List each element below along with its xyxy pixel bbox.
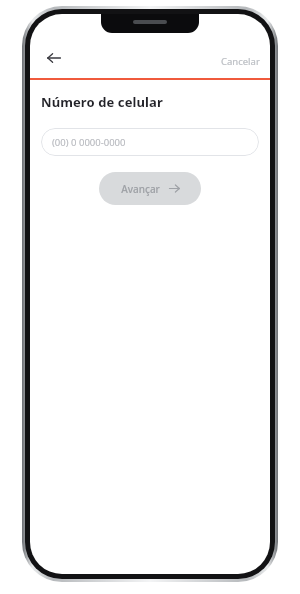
staticText: Cancelar <box>221 55 260 68</box>
staticText: Número de celular <box>41 93 163 111</box>
button[interactable]: (00) 0 0000-0000 <box>41 128 259 156</box>
button[interactable]: Voltar <box>38 42 70 74</box>
staticText: (00) 0 0000-0000 <box>52 136 126 149</box>
button[interactable]: Cancelar <box>215 49 266 74</box>
button[interactable]: Avançar <box>99 172 201 205</box>
staticText: Avançar <box>121 182 160 196</box>
